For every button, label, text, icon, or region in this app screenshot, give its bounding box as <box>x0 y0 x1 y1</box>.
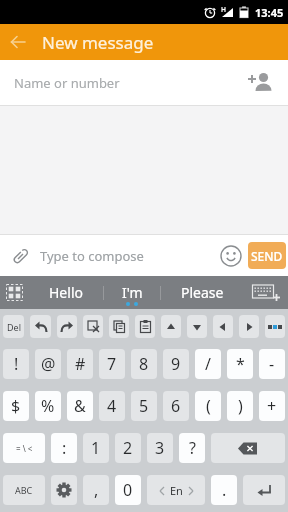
button[interactable] <box>213 315 233 338</box>
staticText: = \ < <box>16 443 33 454</box>
button[interactable]: Del <box>3 315 24 338</box>
button[interactable]: : <box>51 433 77 463</box>
button[interactable]: . <box>211 475 237 505</box>
staticText: SEND <box>251 248 283 264</box>
button[interactable]: SEND <box>248 242 286 269</box>
staticText: 6 <box>171 395 181 417</box>
staticText: 5 <box>139 395 149 417</box>
staticText: Name or number <box>14 74 120 92</box>
staticText: # <box>75 353 86 375</box>
button[interactable]: 5 <box>131 391 157 421</box>
button[interactable]: 4 <box>99 391 125 421</box>
button[interactable]: 0 <box>115 475 141 505</box>
staticText: % <box>41 395 55 417</box>
staticText: 4 <box>107 395 117 417</box>
staticText: 8 <box>139 353 149 375</box>
staticText: - <box>269 353 275 375</box>
staticText: En <box>170 483 183 498</box>
button[interactable] <box>243 276 288 309</box>
staticText: 3 <box>155 437 165 459</box>
button[interactable]: / <box>195 349 221 379</box>
button[interactable] <box>265 315 285 338</box>
button[interactable]: + <box>259 391 285 421</box>
staticText: Type to compose <box>40 247 144 265</box>
button[interactable]: @ <box>35 349 61 379</box>
button[interactable]: 6 <box>163 391 189 421</box>
staticText: ! <box>14 353 19 375</box>
button[interactable]: 7 <box>99 349 125 379</box>
button[interactable] <box>187 315 207 338</box>
staticText: ? <box>189 437 196 459</box>
button[interactable]: , <box>83 475 109 505</box>
button[interactable]: % <box>35 391 61 421</box>
staticText: Please <box>181 283 224 302</box>
staticText: 2 <box>123 437 133 459</box>
button[interactable]: ! <box>3 349 29 379</box>
button[interactable] <box>243 475 285 505</box>
staticText: : <box>62 437 67 459</box>
staticText: New message <box>42 31 154 54</box>
staticText: + <box>267 395 277 417</box>
button[interactable] <box>51 475 77 505</box>
button[interactable]: ABC <box>3 475 45 505</box>
staticText: . <box>222 479 227 501</box>
button[interactable]: Name or number <box>0 60 288 105</box>
button[interactable] <box>57 315 77 338</box>
staticText: ABC <box>15 484 33 496</box>
button[interactable] <box>135 315 155 338</box>
staticText: Hello <box>49 283 83 302</box>
staticText: 9 <box>171 353 181 375</box>
button[interactable]: I'm <box>104 276 160 309</box>
button[interactable]: $ <box>3 391 29 421</box>
button[interactable]: Please <box>161 276 243 309</box>
button[interactable]: 8 <box>131 349 157 379</box>
button[interactable] <box>240 65 280 101</box>
button[interactable] <box>0 236 40 276</box>
button[interactable]: ? <box>179 433 205 463</box>
button[interactable] <box>83 315 103 338</box>
staticText: ) <box>238 395 243 417</box>
button[interactable]: ) <box>227 391 253 421</box>
button[interactable] <box>161 315 181 338</box>
staticText: @ <box>41 353 56 375</box>
staticText: 13:45 <box>255 5 284 20</box>
staticText: I'm <box>122 283 143 302</box>
button[interactable] <box>30 315 51 338</box>
button[interactable] <box>211 433 285 463</box>
staticText: , <box>94 479 99 501</box>
button[interactable]: & <box>67 391 93 421</box>
staticText: / <box>205 353 211 375</box>
button[interactable] <box>0 276 28 309</box>
staticText: 0 <box>123 479 133 501</box>
button[interactable]: 9 <box>163 349 189 379</box>
button[interactable] <box>239 315 259 338</box>
button[interactable]: * <box>227 349 253 379</box>
button[interactable]: 3 <box>147 433 173 463</box>
staticText: * <box>236 353 245 375</box>
button[interactable]: 1 <box>83 433 109 463</box>
button[interactable] <box>0 24 36 60</box>
staticText: Del <box>7 321 21 333</box>
button[interactable]: - <box>259 349 285 379</box>
staticText: & <box>74 395 86 417</box>
button[interactable]: En <box>147 475 205 505</box>
button[interactable] <box>109 315 129 338</box>
button[interactable]: 2 <box>115 433 141 463</box>
staticText: ( <box>206 395 211 417</box>
staticText: $ <box>11 395 21 417</box>
button[interactable]: # <box>67 349 93 379</box>
button[interactable]: ( <box>195 391 221 421</box>
staticText: 7 <box>107 353 117 375</box>
button[interactable]: = \ < <box>3 433 45 463</box>
button[interactable]: Hello <box>28 276 103 309</box>
button[interactable] <box>217 236 245 276</box>
staticText: 1 <box>91 437 101 459</box>
